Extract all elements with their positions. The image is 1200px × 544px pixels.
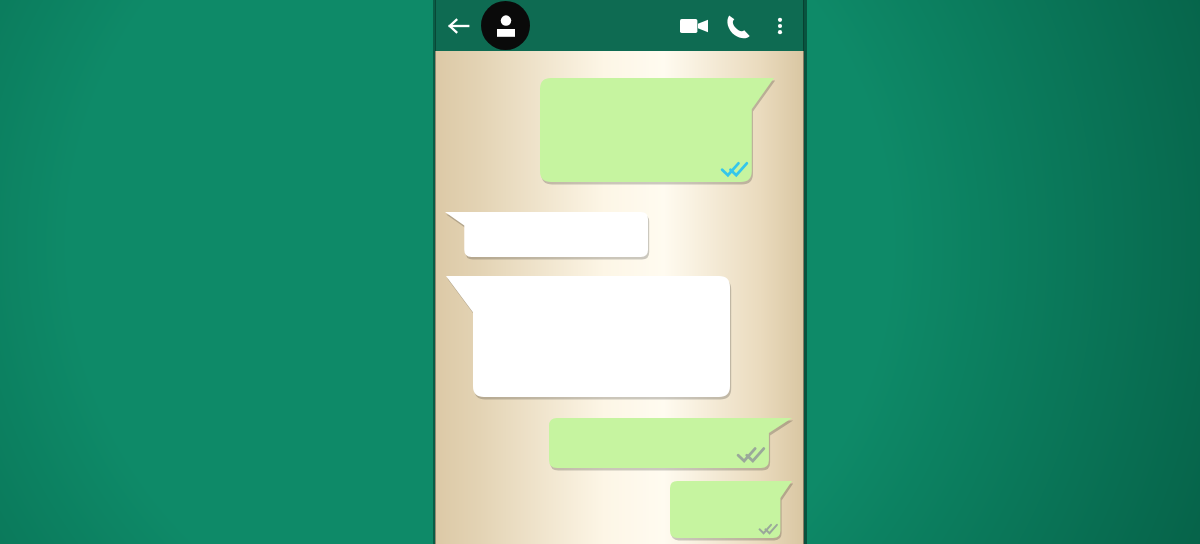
button[interactable]	[445, 212, 648, 257]
button[interactable]	[549, 418, 792, 468]
button[interactable]: More options	[760, 6, 800, 46]
button[interactable]: Back	[441, 8, 477, 44]
button[interactable]	[670, 481, 792, 538]
button[interactable]: Video call	[672, 4, 716, 48]
button[interactable]	[446, 276, 730, 397]
button[interactable]: Voice call	[716, 4, 760, 48]
button[interactable]: Contact profile	[481, 1, 530, 50]
button[interactable]	[540, 78, 774, 182]
